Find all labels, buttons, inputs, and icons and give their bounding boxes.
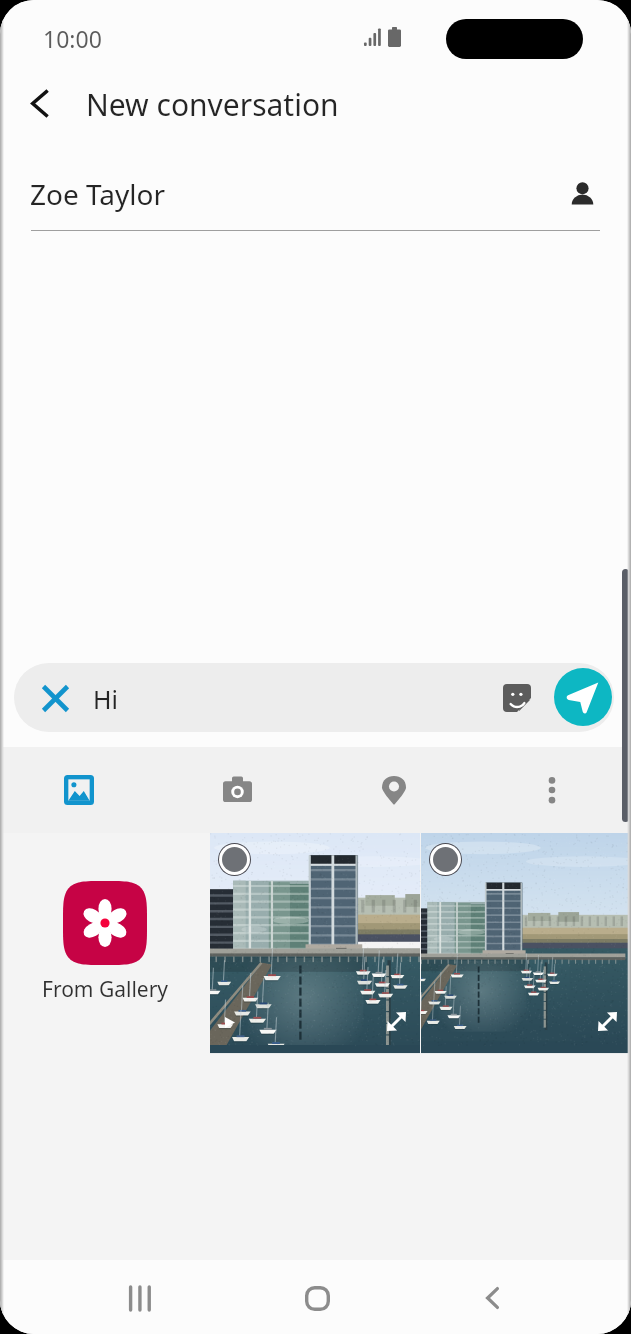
button[interactable]: Camera (204, 757, 270, 823)
button[interactable]: Back (452, 1258, 532, 1334)
button[interactable]: Photo (210, 833, 420, 1045)
button[interactable]: Location (361, 757, 427, 823)
button[interactable]: Send (554, 668, 612, 726)
staticText: 10:00 (43, 23, 102, 54)
staticText: Zoe Taylor (30, 175, 166, 213)
button[interactable]: Add contact (552, 164, 612, 224)
button[interactable]: From Gallery (25, 875, 185, 1004)
staticText: From Gallery (42, 975, 169, 1004)
button[interactable]: More options (519, 757, 585, 823)
button[interactable]: Photo (421, 833, 631, 1045)
staticText: Hi (93, 682, 118, 716)
button[interactable]: Stickers (490, 671, 544, 725)
button[interactable]: Gallery (46, 757, 112, 823)
button[interactable]: Home (277, 1258, 357, 1334)
staticText: New conversation (86, 84, 339, 125)
button[interactable]: Close (28, 671, 82, 725)
button[interactable]: Back (11, 75, 67, 131)
button[interactable]: Recent apps (100, 1258, 180, 1334)
